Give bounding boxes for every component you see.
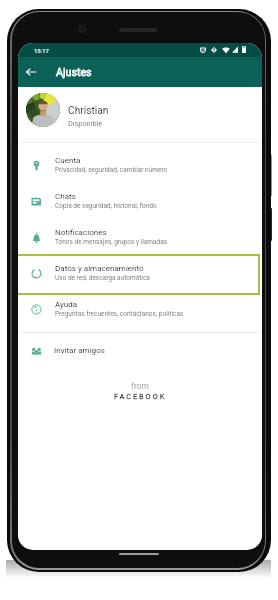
button[interactable]: Chats <box>18 183 262 219</box>
button[interactable]: Ayuda <box>18 291 262 327</box>
staticText: Notificaciones <box>55 228 107 237</box>
staticText: Christian <box>68 105 109 117</box>
staticText: Ajustes <box>56 66 92 79</box>
staticText: Copia de seguridad, historial, fondo <box>55 202 157 210</box>
button[interactable]: Invitar amigos <box>18 333 262 370</box>
staticText: Ayuda <box>55 300 78 309</box>
staticText: 15:17 <box>34 47 49 54</box>
staticText: Chats <box>55 192 76 201</box>
button[interactable]: Cuenta <box>18 147 262 183</box>
button[interactable]: Datos y almacenamiento <box>18 255 262 291</box>
staticText: Privacidad, seguridad, cambiar número <box>55 166 168 174</box>
staticText: Cuenta <box>55 156 81 165</box>
staticText: Tonos de mensajes, grupos y llamadas <box>55 238 168 246</box>
staticText: from <box>131 381 149 391</box>
staticText: Disponible <box>68 119 103 128</box>
staticText: Uso de red, descarga automática <box>55 274 150 282</box>
staticText: Datos y almacenamiento <box>55 264 144 273</box>
staticText: Preguntas frecuentes, contáctanos, polít… <box>55 310 184 318</box>
button[interactable]: Notificaciones <box>18 219 262 255</box>
button[interactable]: Back <box>18 57 44 87</box>
staticText: Invitar amigos <box>54 346 105 355</box>
staticText: FACEBOOK <box>114 392 167 401</box>
button[interactable]: Christian <box>18 87 262 142</box>
